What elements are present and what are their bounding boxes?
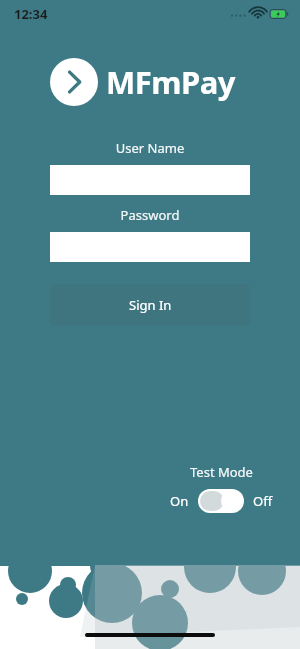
staticText: Test Mode: [190, 463, 253, 481]
button[interactable]: Sign In: [50, 284, 250, 326]
staticText: On: [170, 492, 189, 510]
staticText: MFmPay: [106, 61, 235, 103]
staticText: Password: [50, 206, 250, 224]
staticText: Off: [253, 492, 273, 510]
staticText: User Name: [50, 139, 250, 157]
staticText: Sign In: [129, 296, 172, 314]
button[interactable]: Test Mode toggle: [198, 489, 244, 513]
button[interactable]: MFmPay logo: [50, 58, 250, 106]
staticText: 12:34: [14, 5, 48, 23]
